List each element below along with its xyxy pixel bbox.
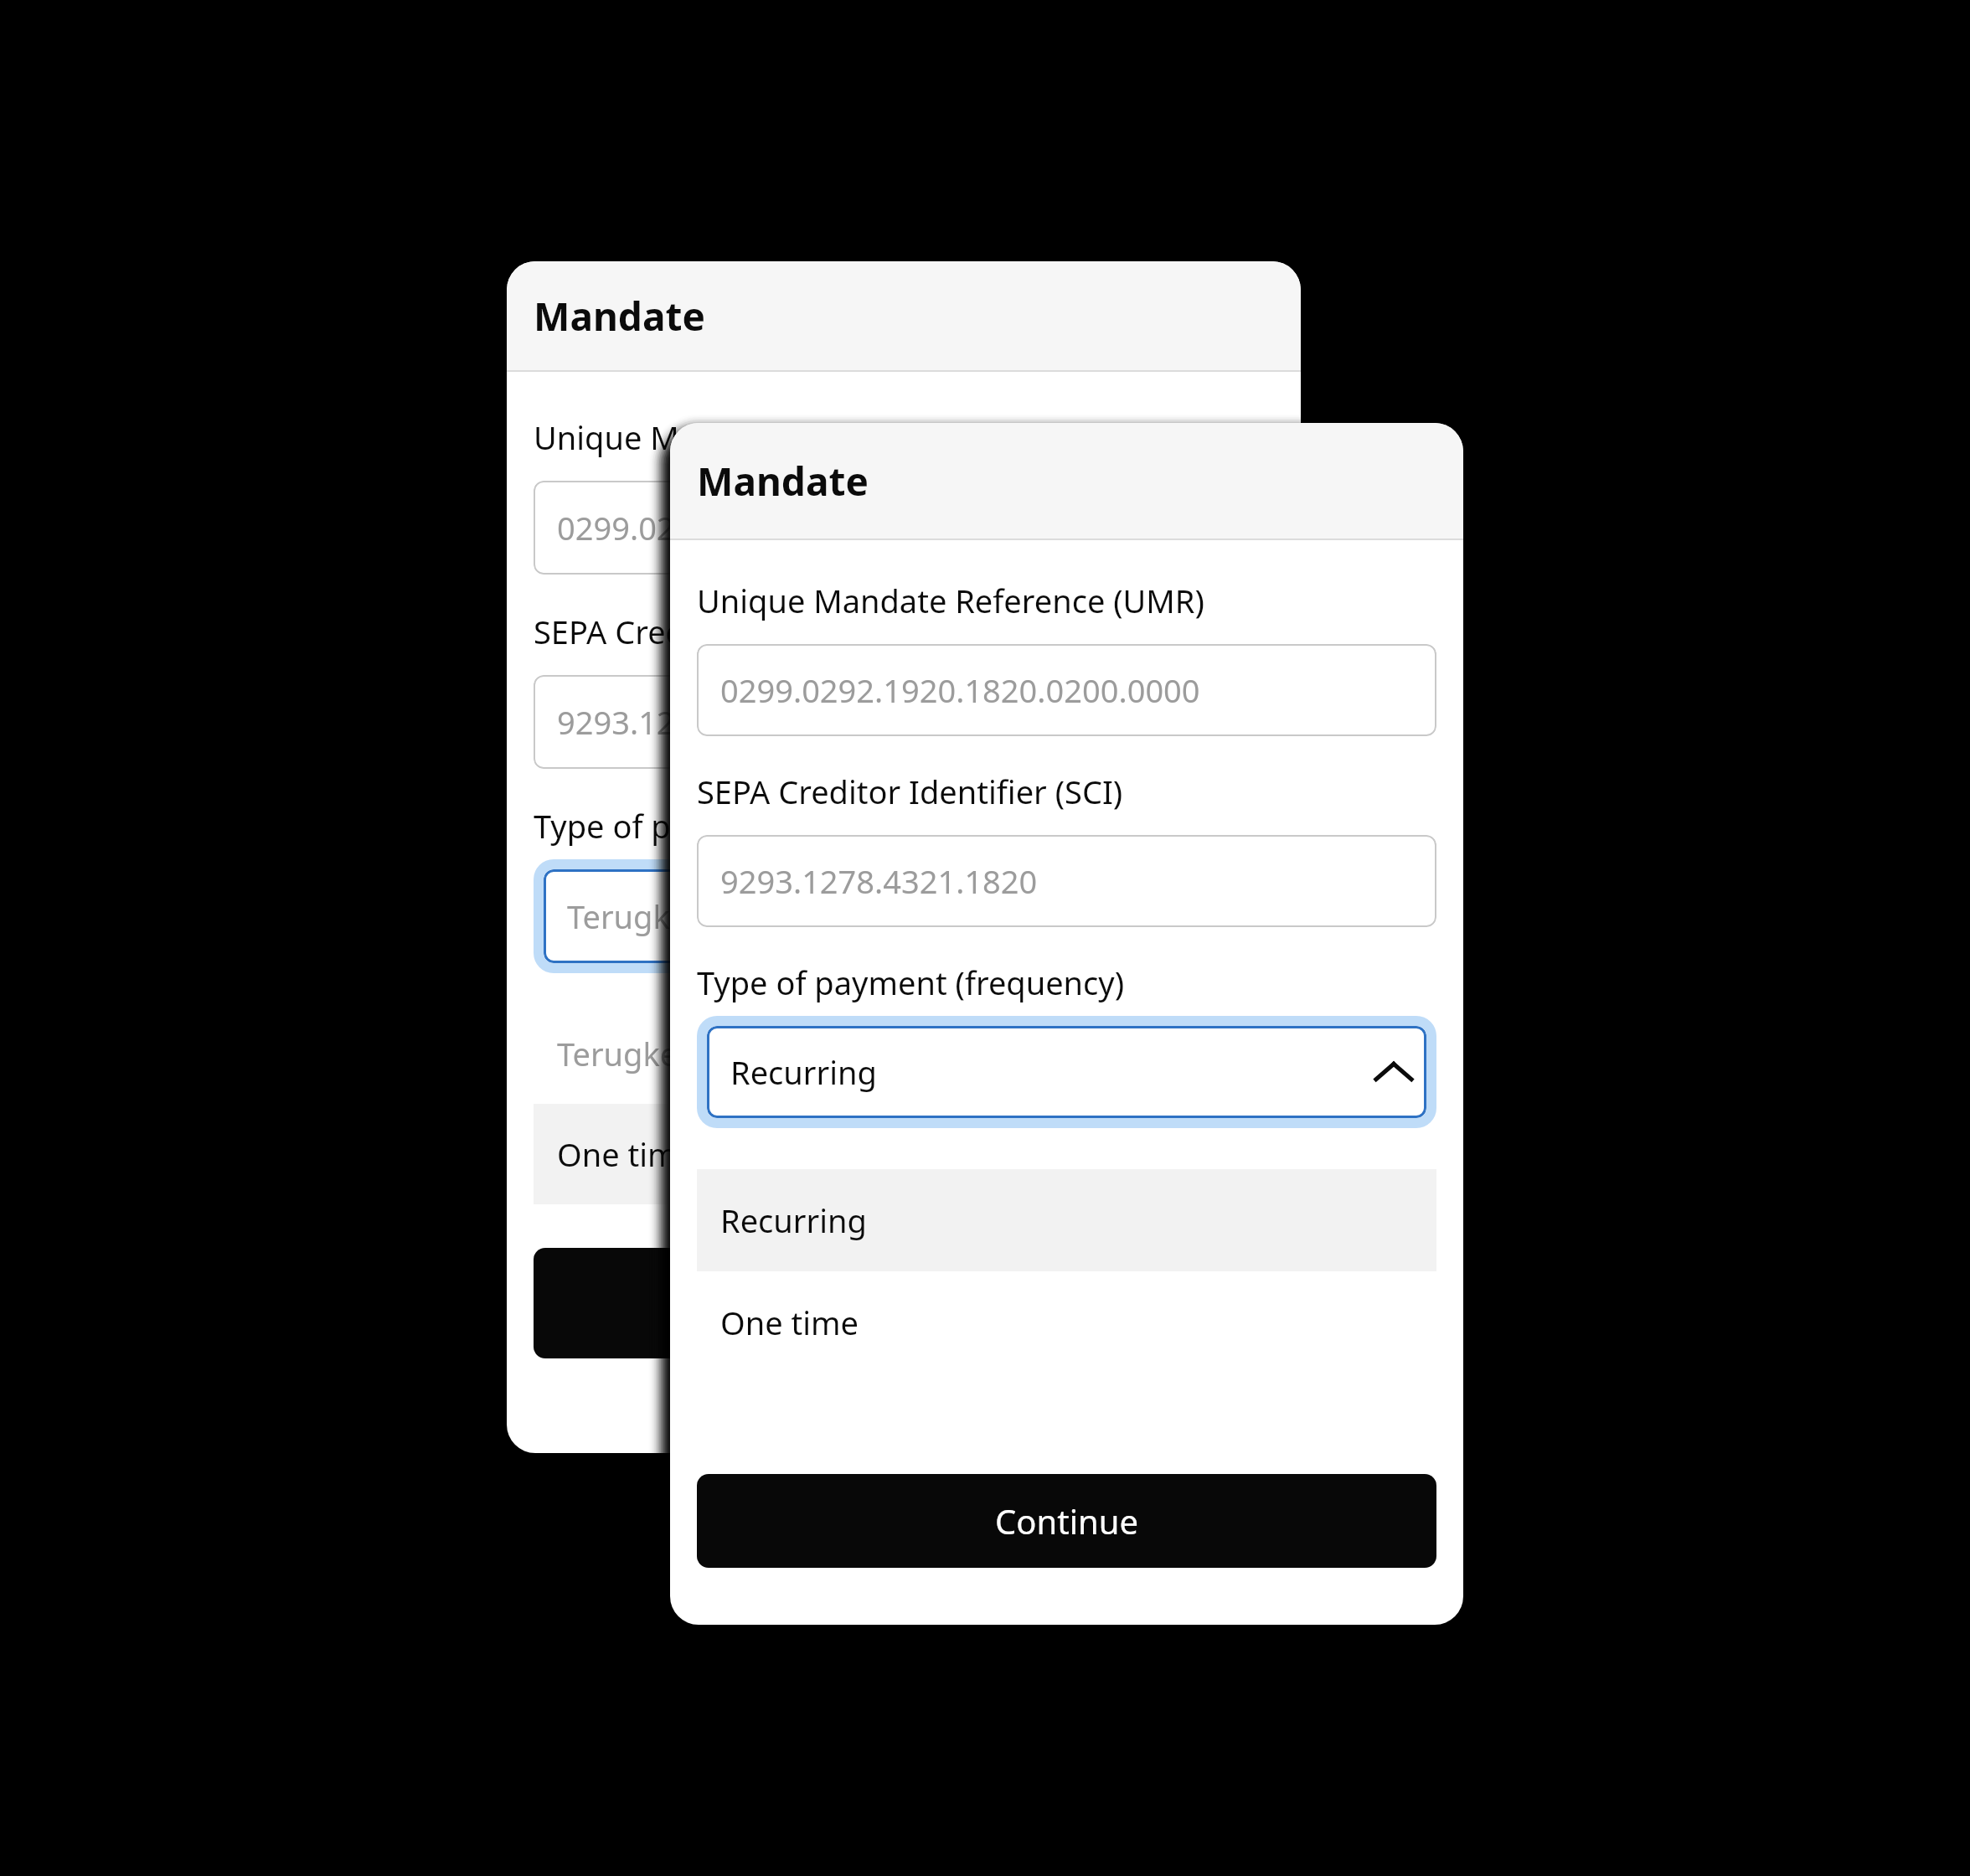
button[interactable]: One time xyxy=(697,1271,1436,1373)
button[interactable]: 0299.0292.1920.1820.0200.0000 xyxy=(534,481,1274,575)
staticText: One time xyxy=(720,1301,859,1344)
staticText: Type of payment (frequency) xyxy=(697,961,1125,1004)
button[interactable]: Continue xyxy=(534,1248,1274,1358)
button[interactable]: Continue xyxy=(697,1474,1436,1568)
staticText: 0299.0292.1920.1820.0200.0000 xyxy=(557,506,1037,549)
button[interactable]: Terugkerend xyxy=(534,859,1274,973)
staticText: Mandate xyxy=(697,455,869,508)
button[interactable]: 9293.1278.4321.1820 xyxy=(534,675,1274,769)
staticText: SEPA Creditor Identifier (SCI) xyxy=(697,770,1123,813)
staticText: Type of payment (frequency) xyxy=(534,804,962,848)
staticText: Mandate xyxy=(534,290,705,343)
staticText: Terugkerend xyxy=(557,1032,748,1075)
staticText: Recurring xyxy=(720,1198,867,1242)
other: Collapse options xyxy=(1374,1052,1414,1092)
staticText: Continue xyxy=(833,1281,976,1326)
button[interactable]: Terugkerend xyxy=(534,1003,1274,1104)
staticText: Recurring xyxy=(730,1050,877,1094)
staticText: 9293.1278.4321.1820 xyxy=(720,859,1038,903)
button[interactable]: One time xyxy=(534,1104,1274,1204)
staticText: SEPA Creditor Identifier (SCI) xyxy=(534,610,960,653)
button[interactable]: 9293.1278.4321.1820 xyxy=(697,835,1436,927)
staticText: Continue xyxy=(995,1498,1138,1544)
button[interactable]: Recurring xyxy=(697,1169,1436,1271)
staticText: One time xyxy=(557,1132,695,1176)
staticText: Unique Mandate Reference (UMR) xyxy=(534,415,1041,459)
other: Collapse options xyxy=(1211,896,1251,936)
staticText: 0299.0292.1920.1820.0200.0000 xyxy=(720,668,1200,712)
button[interactable]: Recurring xyxy=(697,1016,1436,1128)
staticText: Terugkerend xyxy=(567,894,758,938)
button[interactable]: 0299.0292.1920.1820.0200.0000 xyxy=(697,644,1436,736)
staticText: Unique Mandate Reference (UMR) xyxy=(697,579,1204,622)
staticText: 9293.1278.4321.1820 xyxy=(557,700,874,744)
